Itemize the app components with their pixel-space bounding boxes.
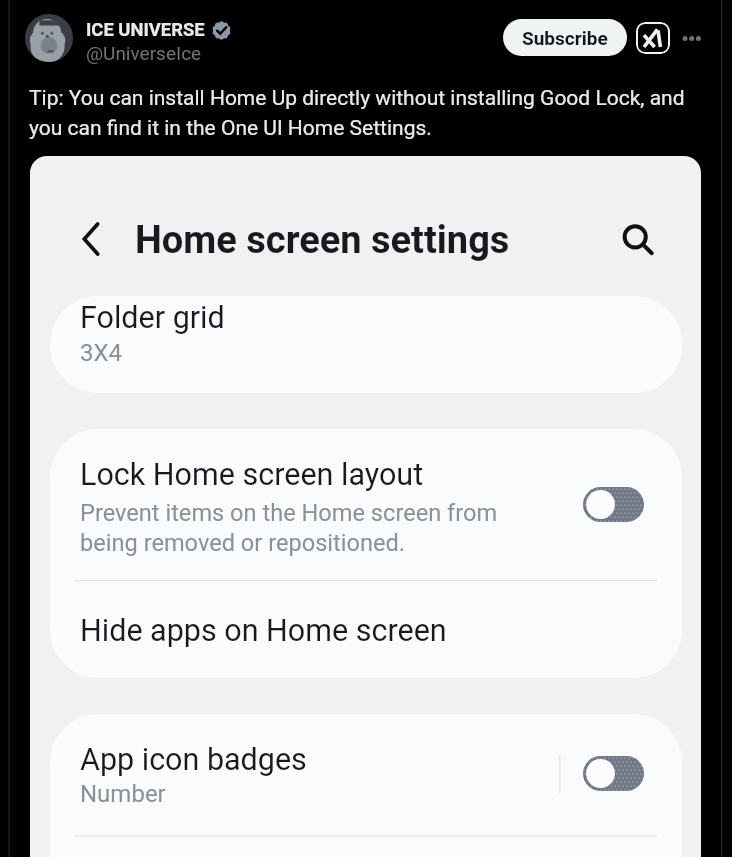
staticText: Number bbox=[80, 780, 166, 808]
button[interactable]: Hide apps on Home screen bbox=[50, 582, 682, 678]
staticText: @UniverseIce bbox=[86, 42, 202, 64]
staticText: Home screen settings bbox=[135, 218, 510, 263]
button[interactable]: More bbox=[674, 22, 706, 54]
button[interactable]: Subscribe bbox=[503, 19, 627, 56]
button[interactable]: Toggle bbox=[583, 487, 644, 522]
staticText: Tip: You can install Home Up directly wi… bbox=[29, 86, 697, 140]
staticText: App icon badges bbox=[80, 742, 307, 778]
button[interactable]: Back bbox=[63, 211, 119, 267]
staticText: Folder grid bbox=[80, 300, 225, 336]
button[interactable]: Search bbox=[607, 212, 663, 268]
staticText: Subscribe bbox=[522, 27, 608, 49]
button[interactable]: Grok bbox=[636, 22, 670, 54]
staticText: ICE UNIVERSE bbox=[86, 19, 205, 41]
staticText: Hide apps on Home screen bbox=[80, 613, 447, 649]
button[interactable]: Toggle bbox=[583, 756, 644, 791]
staticText: Prevent items on the Home screen from be… bbox=[80, 499, 498, 557]
staticText: 3X4 bbox=[80, 339, 123, 367]
button[interactable]: Lock Home screen layout bbox=[50, 429, 682, 581]
button[interactable]: App icon badges bbox=[50, 714, 682, 835]
staticText: Lock Home screen layout bbox=[80, 457, 424, 493]
button[interactable]: Profile picture bbox=[25, 14, 73, 62]
button[interactable]: Folder grid bbox=[50, 296, 682, 393]
